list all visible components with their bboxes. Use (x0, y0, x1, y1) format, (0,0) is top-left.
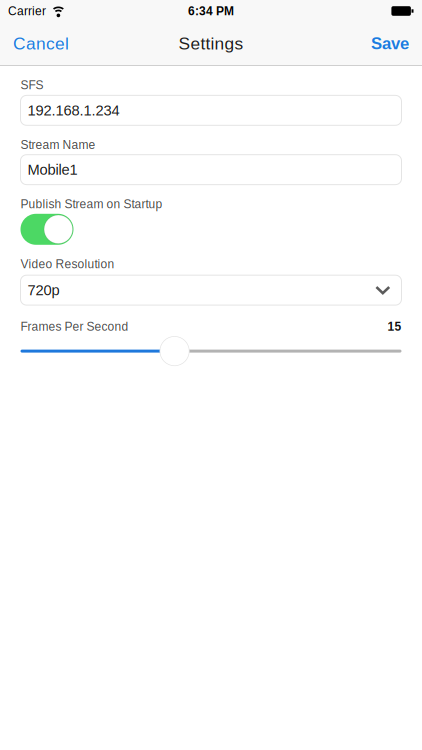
staticText: 6:34 PM (188, 4, 234, 18)
staticText: Carrier (8, 4, 46, 18)
button[interactable]: Publish Stream on Startup (20, 214, 73, 245)
button[interactable]: 192.168.1.234 (20, 95, 401, 125)
staticText: Video Resolution (20, 257, 114, 271)
staticText: SFS (20, 78, 43, 92)
staticText: Cancel (13, 34, 69, 53)
staticText: Stream Name (20, 138, 95, 152)
staticText: Save (371, 34, 409, 53)
button[interactable]: Save (361, 22, 422, 65)
staticText: 192.168.1.234 (27, 102, 119, 119)
button[interactable]: Cancel (0, 22, 79, 65)
button[interactable]: 720p (20, 275, 401, 305)
staticText: Publish Stream on Startup (20, 197, 162, 211)
staticText: Frames Per Second (20, 320, 128, 333)
staticText: Settings (178, 34, 243, 53)
staticText: 720p (27, 282, 59, 298)
staticText: 15 (387, 320, 401, 333)
staticText: Mobile1 (27, 161, 77, 178)
button[interactable]: Mobile1 (20, 155, 401, 185)
